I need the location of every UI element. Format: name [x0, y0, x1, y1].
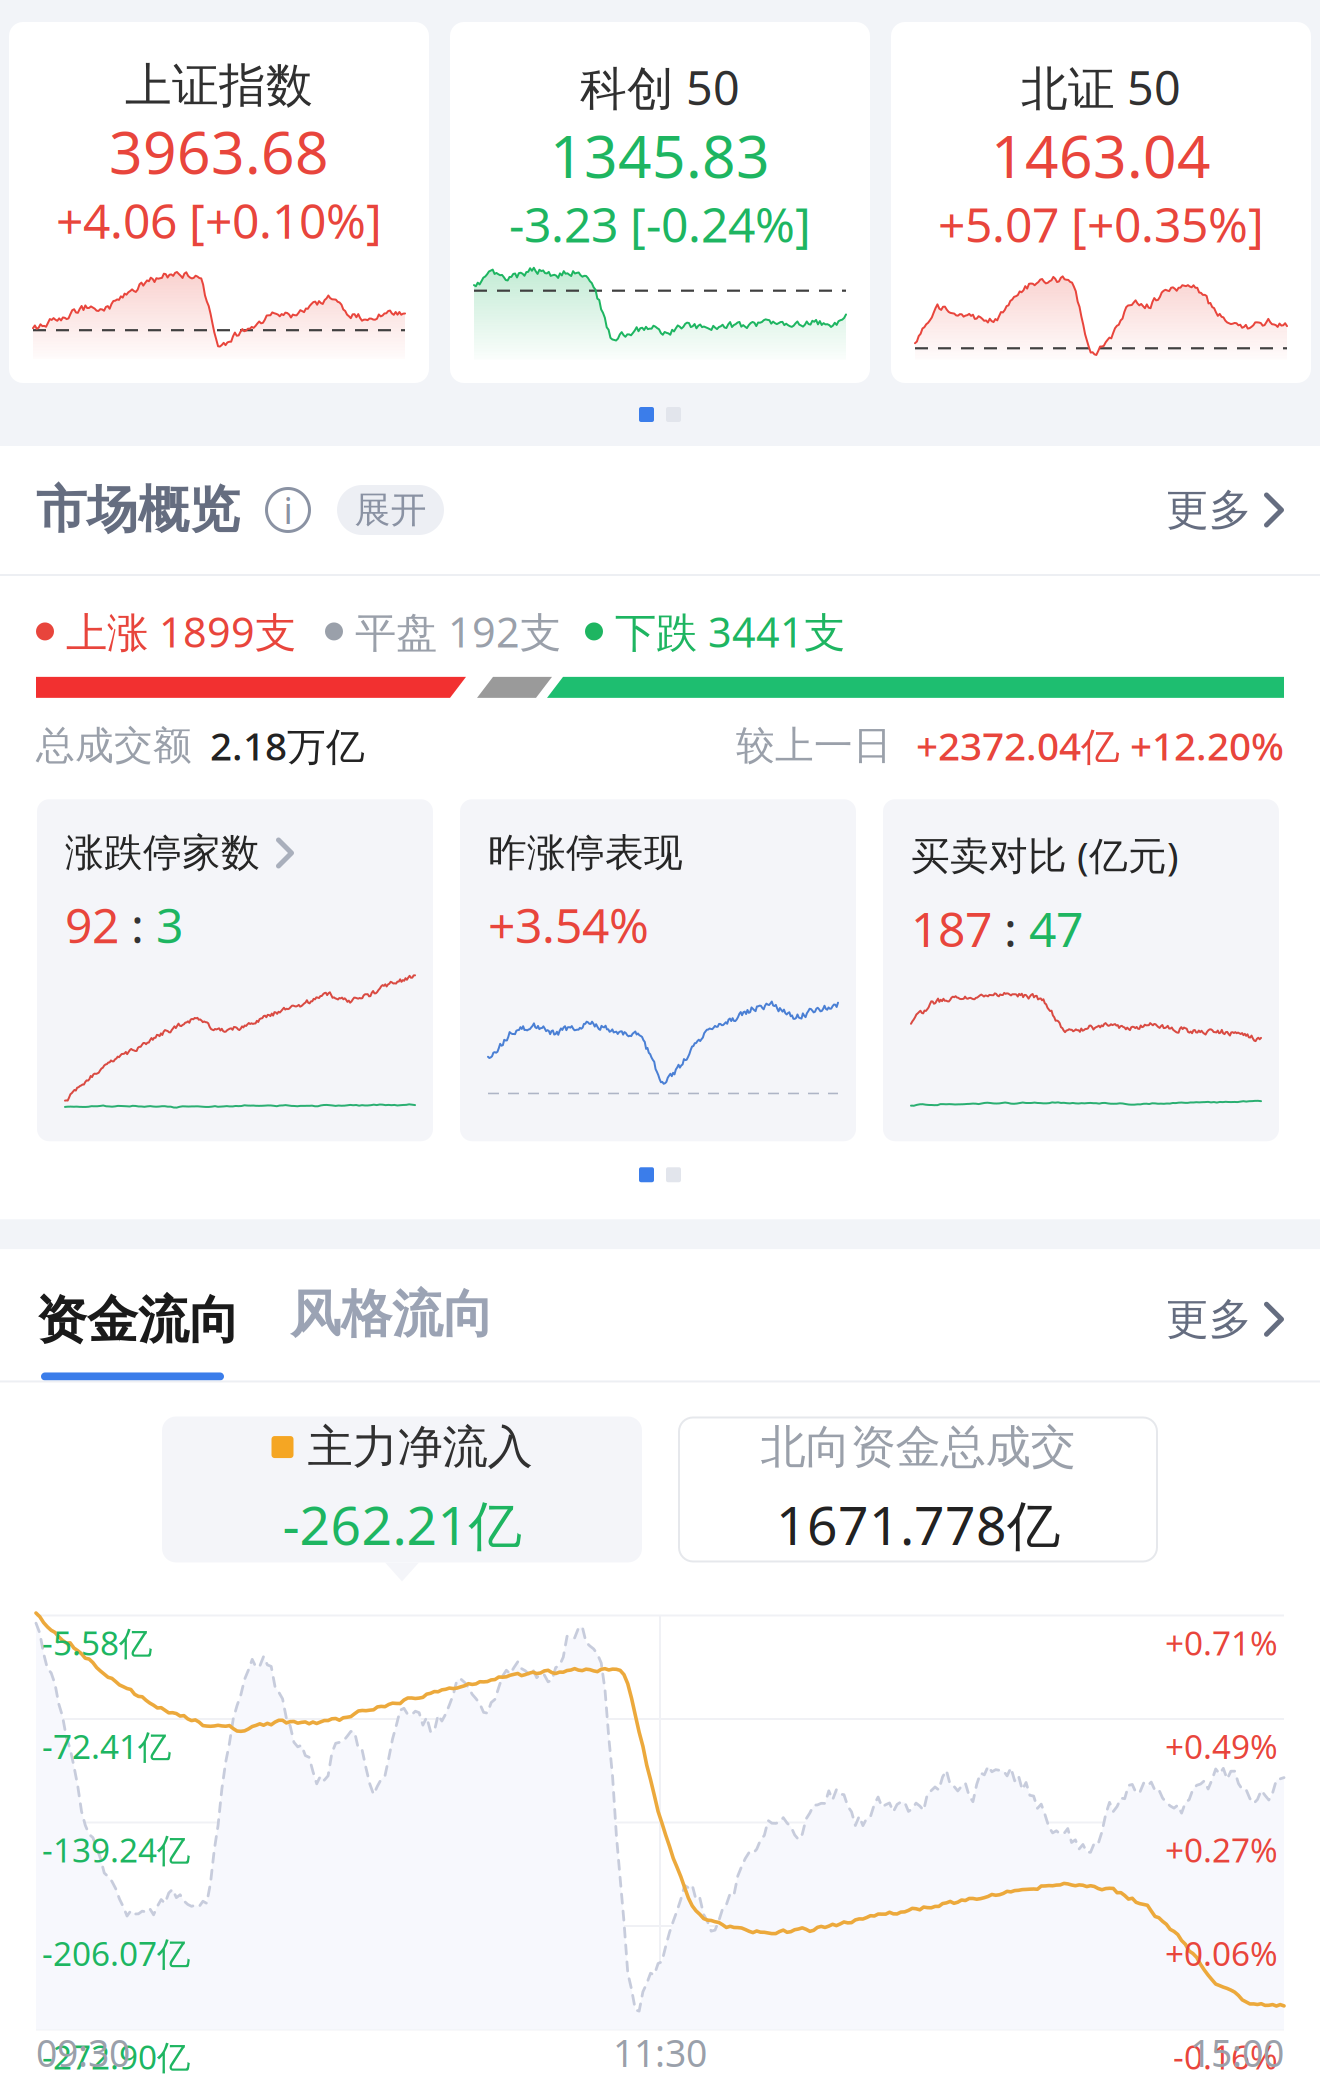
staticText: 北向资金总成交 — [760, 1419, 1075, 1475]
staticText: 北证 50 — [1021, 56, 1181, 118]
staticText: 47 — [1029, 897, 1083, 960]
staticText: i — [283, 486, 292, 534]
staticText: +4.06 [+0.10%] — [56, 188, 382, 252]
staticText: 总成交额 — [36, 722, 192, 769]
staticText: +2372.04亿 +12.20% — [916, 720, 1284, 771]
staticText: 资金流向 — [36, 1289, 240, 1351]
staticText: -0.16% — [1173, 2034, 1278, 2079]
staticText: +3.54% — [488, 893, 649, 956]
staticText: 上涨 1899支 — [66, 604, 296, 659]
button[interactable]: 昨涨停表现 — [460, 799, 856, 1141]
button[interactable]: Info — [262, 484, 314, 536]
staticText: 1671.778亿 — [776, 1489, 1060, 1560]
staticText: 1463.04 — [991, 116, 1211, 194]
staticText: +5.07 [+0.35%] — [938, 192, 1264, 256]
staticText: 11:30 — [613, 2028, 707, 2077]
staticText: 市场概览 — [36, 479, 240, 541]
staticText: 3963.68 — [109, 112, 329, 190]
button[interactable]: 资金流向 — [36, 1289, 240, 1351]
button[interactable]: 更多 — [1166, 1293, 1284, 1345]
staticText: 上证指数 — [125, 57, 313, 114]
staticText: : — [992, 897, 1029, 960]
button[interactable]: 风格流向 — [290, 1283, 494, 1345]
staticText: 昨涨停表现 — [488, 829, 683, 877]
button[interactable]: 科创 50 — [450, 22, 870, 383]
staticText: 更多 — [1166, 484, 1252, 536]
button[interactable]: 涨跌停家数 — [37, 799, 433, 1141]
staticText: 涨跌停家数 — [65, 829, 260, 877]
staticText: 主力净流入 — [307, 1419, 532, 1475]
staticText: +0.27% — [1165, 1827, 1278, 1872]
staticText: +0.71% — [1165, 1620, 1278, 1665]
staticText: 15:00 — [1190, 2028, 1284, 2077]
staticText: -262.21亿 — [282, 1489, 521, 1560]
staticText: 下跌 3441支 — [615, 604, 845, 659]
staticText: 187 — [911, 897, 992, 960]
staticText: 风格流向 — [290, 1283, 494, 1345]
staticText: 1345.83 — [550, 116, 770, 194]
staticText: -206.07亿 — [42, 1931, 190, 1975]
staticText: 较上一日 — [736, 722, 892, 769]
staticText: +0.06% — [1165, 1931, 1278, 1975]
staticText: 92 — [65, 893, 119, 956]
staticText: -3.23 [-0.24%] — [509, 192, 811, 256]
staticText: 买卖对比 (亿元) — [911, 829, 1179, 880]
staticText: 09:30 — [36, 2028, 130, 2077]
staticText: +0.49% — [1165, 1724, 1278, 1768]
staticText: 3 — [156, 893, 183, 956]
button[interactable]: 主力净流入 — [162, 1416, 642, 1562]
button[interactable]: 上证指数 — [9, 22, 429, 383]
button[interactable]: 更多 — [1166, 484, 1284, 536]
button[interactable]: 展开 — [337, 485, 444, 535]
button[interactable]: 北向资金总成交 — [678, 1416, 1158, 1562]
staticText: 更多 — [1166, 1293, 1252, 1345]
staticText: 科创 50 — [580, 56, 740, 118]
staticText: -139.24亿 — [42, 1827, 190, 1872]
staticText: 2.18万亿 — [210, 720, 365, 771]
staticText: : — [119, 893, 156, 956]
staticText: -272.90亿 — [42, 2034, 190, 2079]
staticText: -72.41亿 — [42, 1724, 171, 1768]
button[interactable]: 买卖对比 (亿元) — [883, 799, 1279, 1141]
staticText: -5.58亿 — [42, 1620, 152, 1665]
staticText: 展开 — [354, 488, 426, 532]
staticText: 平盘 192支 — [355, 604, 561, 659]
button[interactable]: 北证 50 — [891, 22, 1311, 383]
